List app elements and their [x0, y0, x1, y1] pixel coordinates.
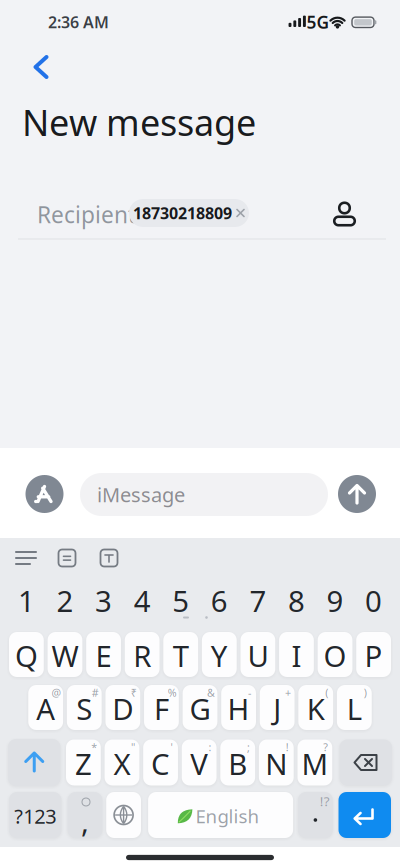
staticText: D — [112, 689, 133, 728]
staticText: S — [76, 689, 92, 728]
button[interactable]: Clipboard — [58, 549, 75, 566]
button[interactable]: Comma — [68, 792, 102, 838]
staticText: 0 — [365, 581, 382, 620]
staticText: C — [151, 744, 170, 783]
button[interactable]: A — [28, 685, 63, 730]
staticText: K — [307, 689, 325, 728]
button[interactable]: O — [318, 632, 352, 677]
staticText: New message — [22, 98, 256, 146]
staticText: B — [228, 744, 247, 783]
button[interactable]: 1 — [9, 580, 44, 620]
button[interactable]: Text format — [100, 549, 117, 566]
staticText: ?123 — [14, 803, 56, 829]
staticText: A — [36, 689, 55, 728]
staticText: 9 — [326, 581, 343, 620]
staticText: , — [81, 801, 89, 840]
staticText: 3 — [95, 581, 112, 620]
staticText: L — [347, 689, 362, 728]
button[interactable]: U — [240, 632, 275, 677]
button[interactable]: C — [143, 739, 178, 785]
staticText: Z — [75, 744, 92, 783]
button[interactable]: L — [337, 685, 372, 730]
staticText: 1 — [18, 581, 35, 620]
button[interactable]: H — [221, 685, 256, 730]
button[interactable]: 8 — [279, 580, 314, 620]
button[interactable]: 7 — [240, 580, 275, 620]
staticText: 5 — [172, 581, 189, 620]
button[interactable]: Apps — [25, 475, 63, 513]
staticText: ) — [364, 685, 367, 700]
button[interactable]: J — [260, 685, 295, 730]
button[interactable]: 18730218809 — [129, 199, 249, 227]
button[interactable]: B — [220, 739, 255, 785]
staticText: 5G — [306, 10, 329, 33]
button[interactable]: K — [298, 685, 333, 730]
staticText: 7 — [249, 581, 266, 620]
staticText: - — [248, 685, 251, 700]
button[interactable]: R — [125, 632, 159, 677]
button[interactable]: Q — [9, 632, 44, 677]
staticText: ₹ — [131, 685, 137, 700]
staticText: P — [365, 636, 383, 675]
button[interactable]: 0 — [356, 580, 391, 620]
staticText: W — [51, 636, 78, 675]
button[interactable]: Return — [338, 792, 391, 838]
button[interactable]: Add contact — [330, 199, 358, 227]
staticText: ? — [323, 740, 328, 754]
staticText: 6 — [211, 581, 228, 620]
button[interactable]: Shift — [8, 739, 60, 786]
staticText: N — [265, 744, 287, 783]
button[interactable]: E — [86, 632, 121, 677]
button[interactable]: 2 — [48, 580, 82, 620]
staticText: 2 — [56, 581, 73, 620]
staticText: " — [131, 740, 135, 754]
button[interactable]: V — [182, 739, 216, 785]
staticText: & — [207, 685, 215, 700]
staticText: ' — [170, 740, 172, 754]
button[interactable]: Switch keyboard — [106, 792, 141, 838]
staticText: E — [96, 636, 112, 675]
button[interactable]: I — [279, 632, 314, 677]
button[interactable]: 6 — [202, 580, 237, 620]
button[interactable]: F — [144, 685, 179, 730]
staticText: ; — [247, 740, 250, 754]
button[interactable]: Y — [202, 632, 237, 677]
button[interactable]: Delete — [339, 739, 392, 785]
staticText: M — [301, 744, 328, 783]
staticText: !? — [320, 792, 330, 810]
button[interactable]: 9 — [318, 580, 352, 620]
button[interactable]: Menu — [15, 550, 37, 566]
staticText: ( — [325, 685, 328, 700]
staticText: 8 — [288, 581, 305, 620]
button[interactable]: W — [48, 632, 82, 677]
button[interactable]: M — [297, 739, 332, 785]
button[interactable]: ?123 — [9, 792, 61, 838]
button[interactable]: P — [356, 632, 391, 677]
button[interactable]: X — [105, 739, 139, 785]
staticText: T — [173, 636, 189, 675]
staticText: U — [247, 636, 268, 675]
button[interactable]: 4 — [125, 580, 159, 620]
staticText: O — [323, 636, 346, 675]
button[interactable]: Z — [66, 739, 101, 785]
button[interactable]: Back — [29, 53, 53, 80]
button[interactable]: S — [67, 685, 102, 730]
button[interactable]: English — [148, 792, 293, 838]
staticText: H — [228, 689, 250, 728]
staticText: 2:36 AM — [48, 11, 109, 33]
button[interactable]: iMessage — [80, 473, 328, 516]
button[interactable]: Period — [298, 792, 333, 838]
button[interactable]: T — [163, 632, 198, 677]
button[interactable]: Send — [338, 475, 376, 513]
staticText: J — [273, 689, 281, 728]
staticText: Y — [211, 636, 228, 675]
button[interactable]: 5 — [163, 580, 198, 620]
staticText: # — [92, 685, 99, 700]
staticText: English — [196, 804, 260, 828]
button[interactable]: G — [183, 685, 217, 730]
button[interactable]: D — [105, 685, 140, 730]
staticText: : — [208, 740, 211, 754]
button[interactable]: 3 — [86, 580, 121, 620]
button[interactable]: N — [259, 739, 294, 785]
staticText: 4 — [134, 581, 151, 620]
